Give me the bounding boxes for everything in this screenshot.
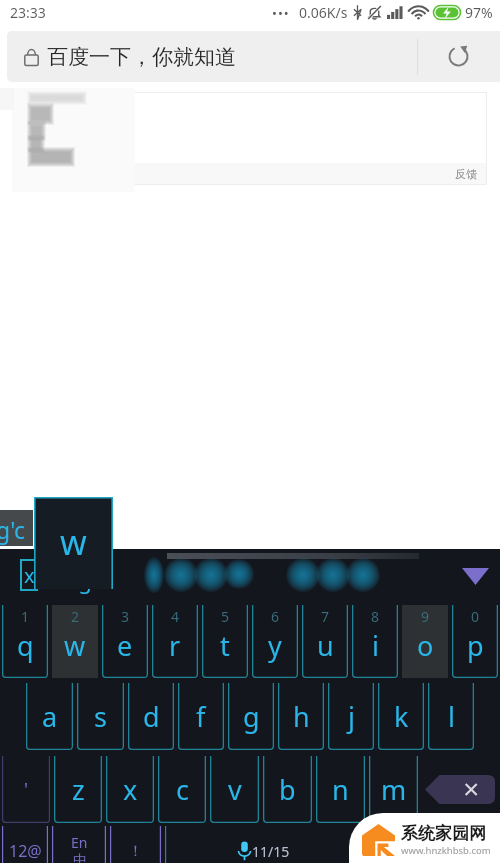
staticText: 4 [171, 607, 180, 626]
button[interactable]: 百度一下，你就知道 [7, 31, 417, 82]
staticText: 0 [471, 607, 480, 626]
button[interactable]: Space / Voice input [165, 826, 361, 863]
staticText: l [448, 698, 455, 735]
staticText: 9 [421, 607, 430, 626]
staticText: z [72, 771, 85, 808]
button[interactable]: j [328, 683, 374, 750]
staticText: m [381, 771, 407, 808]
staticText: f [196, 698, 206, 735]
staticText: ！ [128, 842, 143, 861]
staticText: r [169, 627, 181, 664]
staticText: 5 [221, 607, 230, 626]
button[interactable]: m [369, 756, 418, 823]
staticText: o [417, 627, 434, 664]
staticText: 8 [371, 607, 380, 626]
button[interactable]: a [26, 683, 73, 750]
button[interactable]: 1 [2, 605, 48, 678]
staticText: i [372, 627, 379, 664]
staticText: 97% [465, 3, 493, 22]
staticText: ••• [272, 4, 290, 22]
button[interactable]: v [210, 756, 259, 823]
button[interactable]: x [106, 756, 154, 823]
staticText: h [293, 698, 310, 735]
staticText: c [176, 771, 189, 808]
button[interactable]: Expand candidates [450, 549, 500, 603]
staticText: 23:33 [10, 3, 46, 22]
button[interactable]: c [158, 756, 206, 823]
button[interactable]: En [52, 826, 106, 863]
staticText: 7 [321, 607, 330, 626]
staticText: w [60, 519, 87, 565]
staticText: d [143, 698, 160, 735]
staticText: 1 [21, 607, 30, 626]
button[interactable]: 9 [402, 605, 448, 678]
staticText: g [243, 698, 260, 735]
button[interactable]: 12@ [2, 826, 48, 863]
staticText: v [228, 771, 242, 808]
button[interactable]: Reload [417, 31, 500, 82]
button[interactable]: 0 [452, 605, 498, 678]
staticText: En [71, 833, 88, 852]
button[interactable]: ' [2, 756, 50, 823]
staticText: t [220, 627, 230, 664]
button[interactable]: d [128, 683, 174, 750]
button[interactable]: h [278, 683, 324, 750]
button[interactable]: Backspace [420, 756, 500, 823]
staticText: a [42, 698, 58, 735]
button[interactable]: z [54, 756, 102, 823]
button[interactable]: ！ [110, 826, 161, 863]
staticText: 12@ [9, 840, 42, 862]
staticText: b [279, 771, 296, 808]
staticText: w [64, 627, 86, 664]
staticText: q [17, 627, 34, 664]
button[interactable]: n [316, 756, 365, 823]
staticText: n [332, 771, 349, 808]
button[interactable]: f [178, 683, 224, 750]
button[interactable] [420, 826, 498, 863]
button[interactable]: g [228, 683, 274, 750]
button[interactable]: 5 [202, 605, 248, 678]
button[interactable]: ? [365, 826, 416, 863]
button[interactable]: s [77, 683, 124, 750]
staticText: 6 [271, 607, 280, 626]
button[interactable]: 6 [252, 605, 298, 678]
staticText: 11/15 [252, 842, 290, 861]
staticText: 百度一下，你就知道 [47, 44, 236, 70]
staticText: u c'g'c [38, 565, 107, 595]
button[interactable]: l [428, 683, 474, 750]
staticText: 2 [71, 607, 80, 626]
staticText: 0.06K/s [299, 3, 348, 22]
button[interactable]: k [378, 683, 424, 750]
button[interactable]: 4 [152, 605, 198, 678]
staticText: p [467, 627, 484, 664]
staticText: 3 [121, 607, 130, 626]
button[interactable]: 8 [352, 605, 398, 678]
button[interactable]: 7 [302, 605, 348, 678]
staticText: k [394, 698, 409, 735]
button[interactable]: 3 [102, 605, 148, 678]
staticText: 中 [73, 852, 87, 863]
staticText: s [94, 698, 107, 735]
staticText: ' [24, 777, 29, 802]
staticText: y [268, 627, 282, 664]
staticText: u [317, 627, 334, 664]
staticText: j [348, 698, 355, 735]
button[interactable]: x [20, 559, 38, 591]
button[interactable]: 2 [52, 605, 98, 678]
staticText: www.hnzkhbsb.com [401, 844, 491, 857]
staticText: 系统家园网 [401, 823, 486, 844]
staticText: 反馈 [455, 167, 477, 181]
staticText: x [24, 562, 35, 589]
staticText: ? [387, 840, 395, 863]
staticText: e [117, 627, 133, 664]
staticText: x [123, 771, 138, 808]
button[interactable]: b [263, 756, 312, 823]
staticText: g'c [0, 514, 25, 545]
